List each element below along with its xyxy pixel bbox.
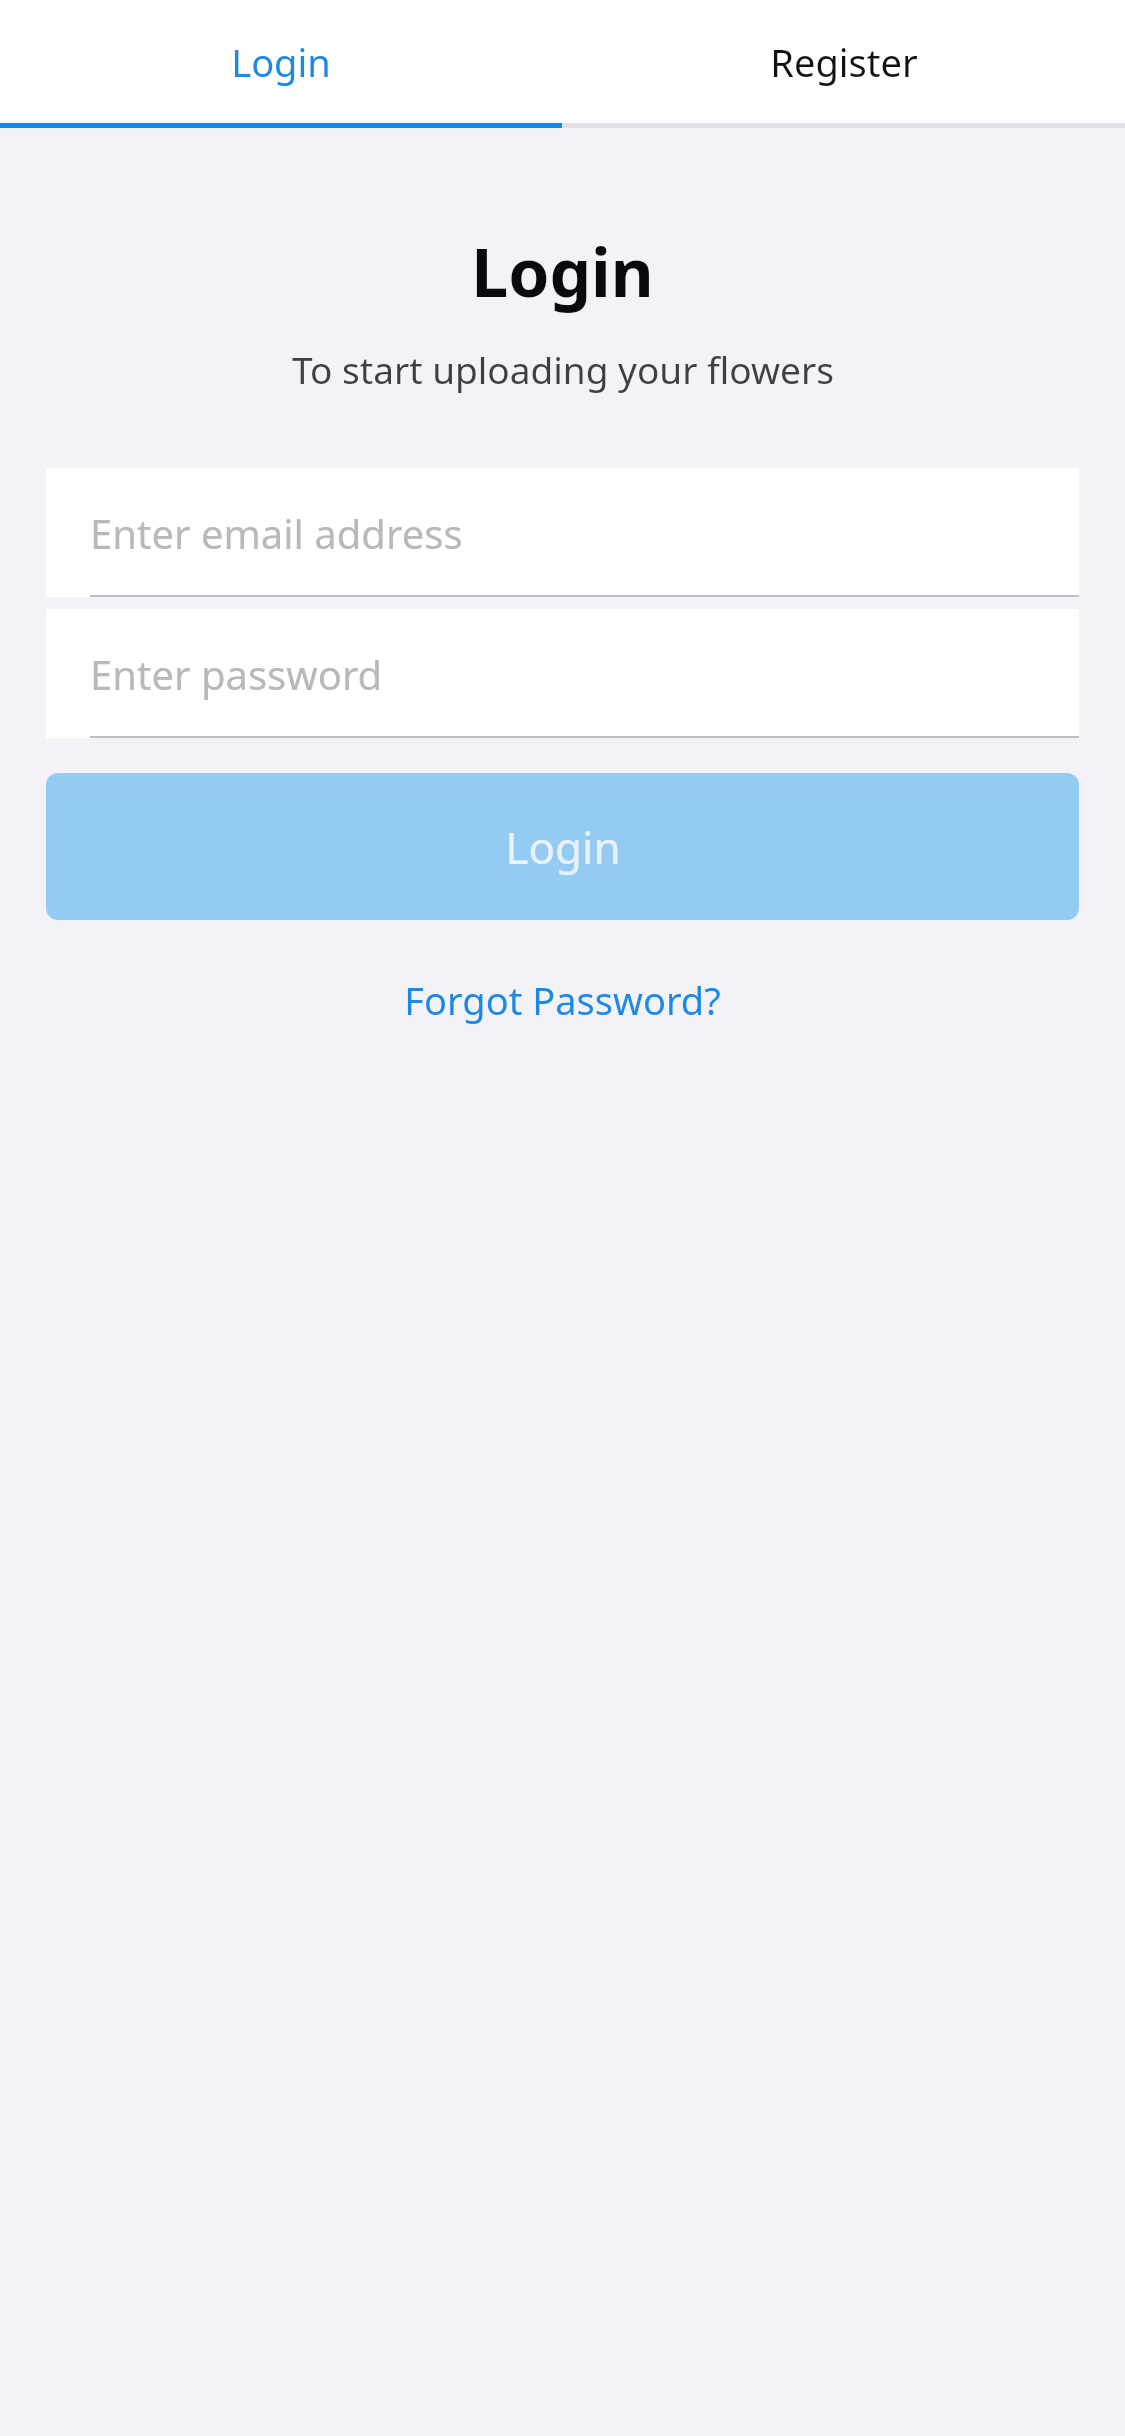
button[interactable]: Register	[562, 0, 1125, 123]
staticText: Enter password	[90, 647, 383, 701]
button[interactable]: Login	[0, 0, 562, 123]
staticText: Register	[770, 36, 918, 88]
staticText: Enter email address	[90, 506, 463, 560]
staticText: Login	[505, 817, 621, 877]
button[interactable]: Enter password	[46, 609, 1079, 738]
staticText: Forgot Password?	[404, 974, 721, 1026]
button[interactable]: Enter email address	[46, 468, 1079, 597]
staticText: Login	[231, 36, 331, 88]
button[interactable]: Login	[46, 773, 1079, 920]
staticText: Login	[471, 226, 654, 316]
button[interactable]: Forgot Password	[380, 964, 745, 1036]
staticText: To start uploading your flowers	[292, 344, 834, 394]
